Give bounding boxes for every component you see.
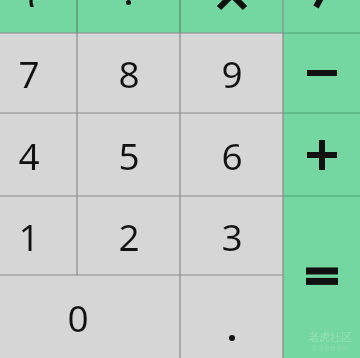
staticText: 7 [18,48,40,98]
staticText: 8 [118,48,140,98]
staticText: 0 [67,292,89,342]
staticText: 5 [118,130,140,180]
staticText: C [27,0,51,7]
button[interactable]: Backspace [77,0,180,33]
staticText: 2 [118,211,140,261]
staticText: 老虎社区 [308,330,352,344]
button[interactable]: Equals [283,196,360,358]
button[interactable]: 5 [77,113,180,196]
staticText: 9 [221,48,243,98]
button[interactable]: Clear [0,0,77,33]
button[interactable]: Plus [283,113,360,196]
button[interactable]: 1 [0,196,77,275]
button[interactable]: 8 [77,33,180,113]
button[interactable]: Decimal point [180,275,283,358]
staticText: 6 [221,130,243,180]
staticText: 分享有价值的 [312,344,348,352]
button[interactable]: 3 [180,196,283,275]
button[interactable]: 2 [77,196,180,275]
button[interactable]: 6 [180,113,283,196]
button[interactable]: 7 [0,33,77,113]
button[interactable]: Divide [283,0,360,33]
staticText: 1 [18,211,40,261]
button[interactable]: Minus [283,33,360,113]
staticText: 3 [221,211,243,261]
staticText: 4 [18,130,40,180]
button[interactable]: Multiply [180,0,283,33]
button[interactable]: 9 [180,33,283,113]
button[interactable]: 0 [0,275,180,358]
button[interactable]: 4 [0,113,77,196]
